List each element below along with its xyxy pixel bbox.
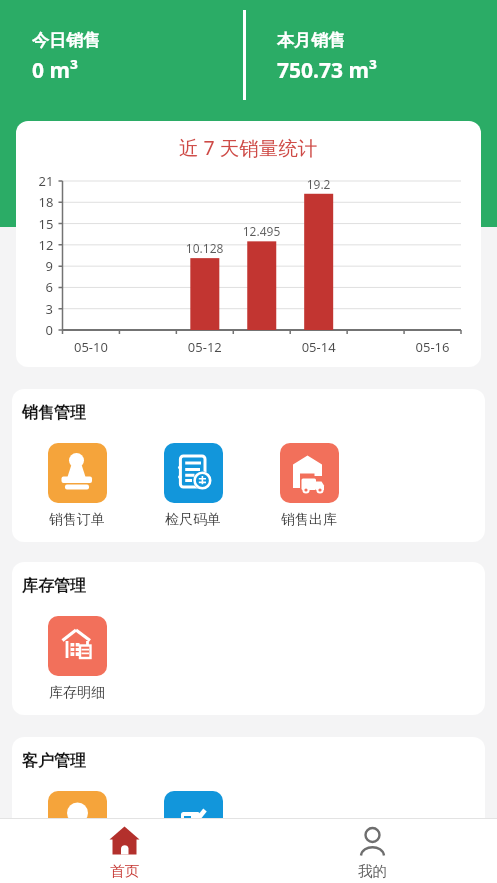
button[interactable]: 客户列表	[19, 791, 135, 877]
button[interactable]: 我的	[248, 825, 497, 883]
staticText: 首页	[110, 862, 139, 880]
staticText: 客户管理	[22, 751, 86, 771]
button[interactable]: 首页	[0, 825, 248, 883]
staticText: 检尺码单	[165, 511, 221, 529]
staticText: 销售订单	[49, 511, 105, 529]
staticText: 库存明细	[49, 684, 105, 702]
staticText: 我的	[358, 862, 387, 880]
staticText: 近 7 天销量统计	[179, 134, 318, 161]
button[interactable]: 销售订单	[19, 443, 135, 529]
button[interactable]: 销售出库	[251, 443, 367, 529]
staticText: 库存管理	[22, 576, 86, 596]
staticText: 本月销售	[277, 30, 345, 51]
button[interactable]: 检尺码单	[135, 443, 251, 529]
staticText: 750.73 m³	[277, 56, 377, 85]
staticText: 0 m³	[32, 56, 78, 85]
button[interactable]: 库存明细	[19, 616, 135, 702]
staticText: 销售出库	[281, 511, 337, 529]
staticText: 今日销售	[32, 30, 100, 51]
staticText: 销售管理	[22, 403, 86, 423]
button[interactable]: 合同管理	[135, 791, 251, 877]
